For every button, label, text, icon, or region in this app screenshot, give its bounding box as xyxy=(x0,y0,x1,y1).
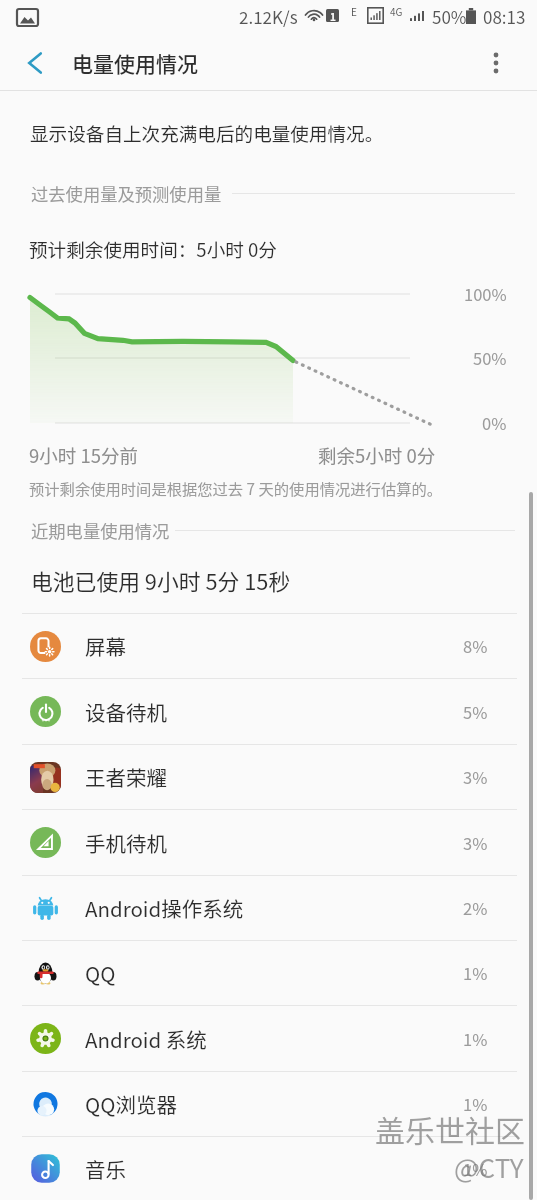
staticText: 剩余5小时 0分 xyxy=(318,442,436,469)
staticText: Android 系统 xyxy=(85,1024,463,1054)
staticText: 50% xyxy=(432,4,467,29)
staticText: 电量使用情况 xyxy=(72,48,198,78)
staticText: 预计剩余使用时间是根据您过去 7 天的使用情况进行估算的。 xyxy=(29,477,443,499)
staticText: 5% xyxy=(463,700,488,724)
staticText: 2% xyxy=(463,896,488,920)
staticText: 手机待机 xyxy=(85,828,463,858)
button[interactable]: Android操作系统 xyxy=(0,876,537,940)
staticText: 预计剩余使用时间：5小时 0分 xyxy=(29,235,277,262)
button[interactable]: QQ浏览器 xyxy=(0,1072,537,1136)
button[interactable]: 屏幕 xyxy=(0,614,537,678)
staticText: 8% xyxy=(463,634,488,658)
staticText: 100% xyxy=(464,282,507,306)
staticText: 过去使用量及预测使用量 xyxy=(31,181,222,206)
staticText: QQ xyxy=(85,958,463,988)
staticText: 近期电量使用情况 xyxy=(31,518,170,543)
staticText: 2.12K/s xyxy=(239,4,298,29)
staticText: E xyxy=(351,4,357,18)
button[interactable]: 王者荣耀 xyxy=(0,745,537,809)
staticText: 1% xyxy=(463,1157,488,1181)
button[interactable]: 手机待机 xyxy=(0,810,537,875)
staticText: Android操作系统 xyxy=(85,893,463,923)
staticText: 显示设备自上次充满电后的电量使用情况。 xyxy=(30,119,384,146)
staticText: 08:13 xyxy=(483,4,526,29)
staticText: 4G xyxy=(390,4,403,18)
button[interactable]: Back xyxy=(13,41,57,85)
button[interactable]: Android 系统 xyxy=(0,1006,537,1071)
staticText: 3% xyxy=(463,765,488,789)
staticText: QQ浏览器 xyxy=(85,1089,463,1119)
staticText: @CTY xyxy=(454,1148,524,1186)
staticText: 1% xyxy=(463,1092,488,1116)
button[interactable]: 音乐 xyxy=(0,1137,537,1200)
button[interactable]: More options xyxy=(474,41,518,85)
staticText: 屏幕 xyxy=(85,631,463,661)
staticText: 1 xyxy=(330,9,336,22)
staticText: 设备待机 xyxy=(85,697,463,727)
staticText: 音乐 xyxy=(85,1154,463,1184)
staticText: 电池已使用 9小时 5分 15秒 xyxy=(31,565,291,597)
staticText: 0% xyxy=(482,411,507,435)
staticText: 盖乐世社区 xyxy=(375,1107,525,1150)
staticText: 50% xyxy=(473,346,507,370)
button[interactable]: 设备待机 xyxy=(0,679,537,744)
staticText: 3% xyxy=(463,831,488,855)
staticText: 9小时 15分前 xyxy=(29,442,138,469)
button[interactable]: QQ xyxy=(0,941,537,1005)
staticText: 1% xyxy=(463,961,488,985)
staticText: 王者荣耀 xyxy=(85,762,463,792)
staticText: 1% xyxy=(463,1027,488,1051)
